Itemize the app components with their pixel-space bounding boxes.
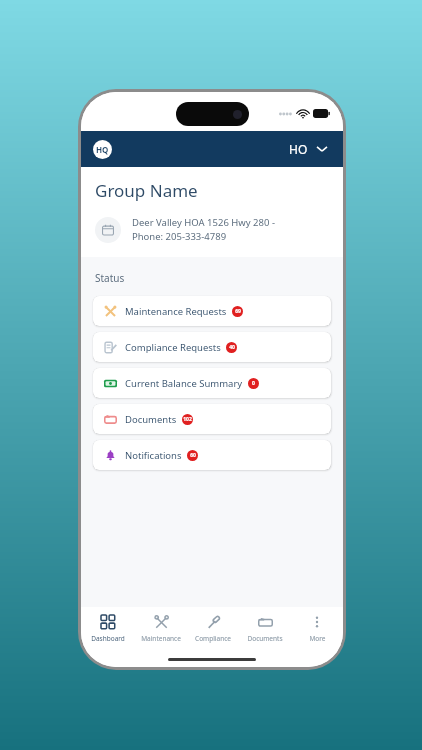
button[interactable]: Notifications [93, 440, 331, 470]
button[interactable]: Documents [239, 607, 291, 653]
staticText: 69 [235, 308, 241, 315]
button[interactable]: More [291, 607, 343, 653]
button[interactable]: Maintenance [134, 607, 187, 653]
button[interactable]: Maintenance Requests [93, 296, 331, 326]
staticText: Compliance Requests [125, 341, 221, 354]
staticText: 40 [229, 344, 235, 351]
button[interactable]: Compliance Requests [93, 332, 331, 362]
button[interactable]: HO [285, 138, 331, 160]
button[interactable]: Dashboard [81, 607, 134, 653]
button[interactable]: Documents [93, 404, 331, 434]
staticText: Documents [247, 634, 283, 643]
staticText: Deer Valley HOA 1526 Hwy 280 - Phone: 20… [132, 216, 275, 243]
staticText: Dashboard [91, 634, 125, 643]
staticText: 102 [183, 416, 192, 423]
staticText: Compliance [195, 634, 231, 643]
button[interactable]: HQ home [93, 140, 112, 159]
staticText: Maintenance Requests [125, 305, 227, 318]
staticText: 0 [252, 380, 255, 387]
staticText: Maintenance [141, 634, 181, 643]
staticText: Notifications [125, 449, 182, 462]
staticText: Documents [125, 413, 177, 426]
staticText: Group Name [95, 179, 198, 202]
staticText: 60 [190, 452, 196, 459]
staticText: Status [95, 271, 125, 285]
staticText: More [309, 634, 326, 643]
staticText: HQ [96, 144, 109, 155]
staticText: HO [289, 141, 308, 157]
staticText: Current Balance Summary [125, 377, 243, 390]
button[interactable]: Compliance [187, 607, 239, 653]
button[interactable]: Current Balance Summary [93, 368, 331, 398]
